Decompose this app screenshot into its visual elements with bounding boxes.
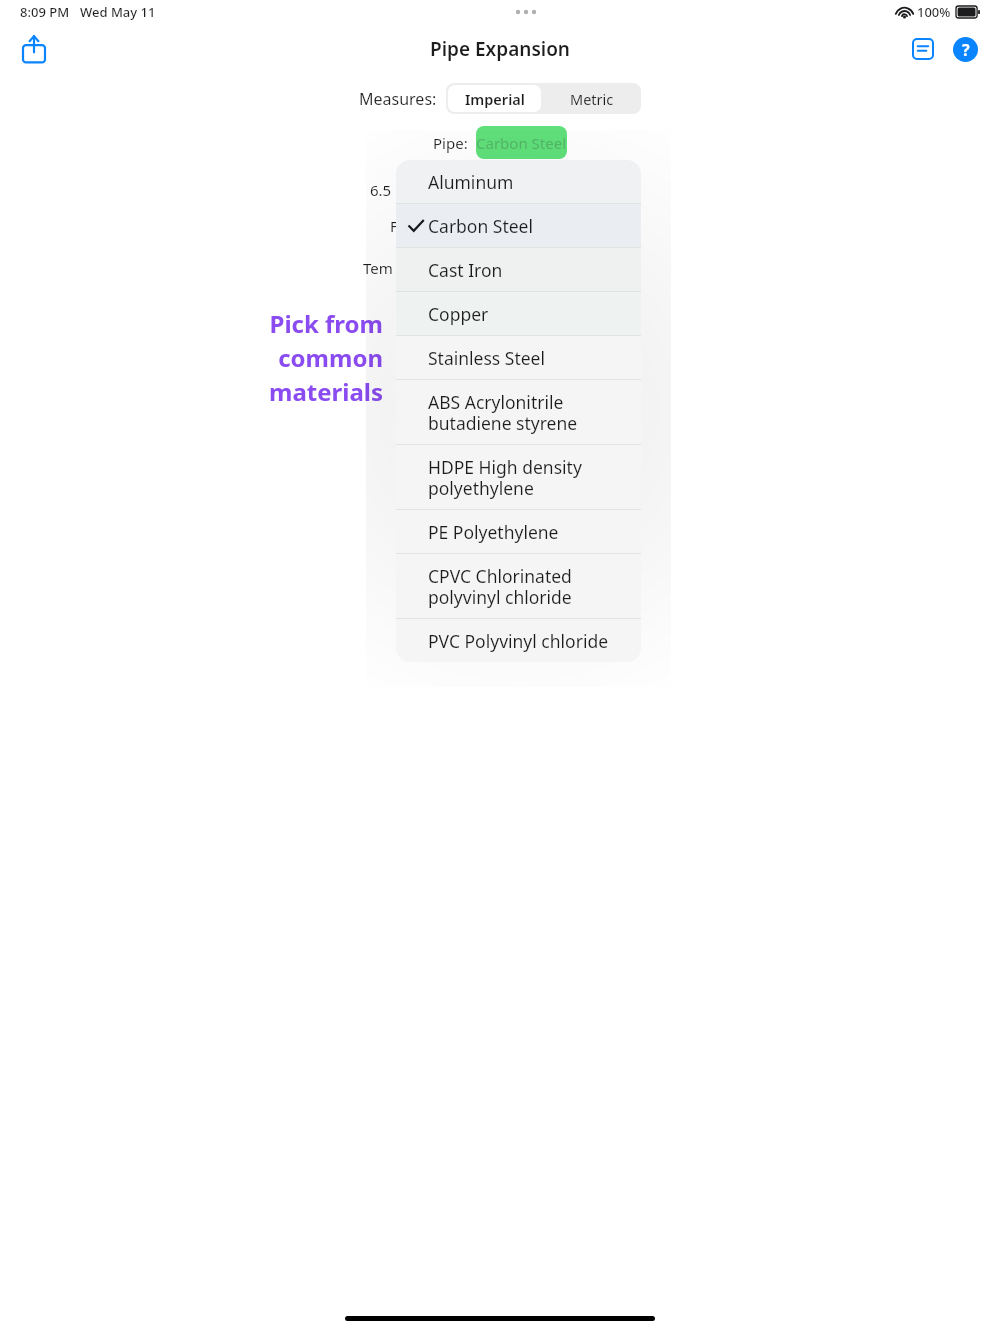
button[interactable]: ABS Acrylonitrile butadiene styrene [396, 380, 641, 444]
staticText: Measures: [359, 88, 437, 110]
staticText: HDPE High density polyethylene [428, 455, 582, 500]
staticText: 100% [917, 3, 951, 21]
staticText: Pipe Expansion [430, 36, 570, 62]
button[interactable]: Notes [902, 28, 944, 70]
button[interactable]: Copper [396, 292, 641, 335]
staticText: ABS Acrylonitrile butadiene styrene [428, 390, 578, 435]
staticText: 6.5 [370, 180, 392, 200]
staticText: PE Polyethylene [428, 520, 559, 544]
staticText: Cast Iron [428, 258, 503, 282]
staticText: Tem [363, 258, 393, 278]
button[interactable]: Cast Iron [396, 248, 641, 291]
button[interactable]: PVC Polyvinyl chloride [396, 619, 641, 662]
staticText: Wed May 11 [80, 3, 156, 21]
staticText: PVC Polyvinyl chloride [428, 629, 609, 653]
button[interactable]: Metric [543, 83, 641, 114]
staticText: CPVC Chlorinated polyvinyl chloride [428, 564, 572, 609]
button[interactable]: Carbon Steel [476, 126, 567, 159]
staticText: Stainless Steel [428, 346, 545, 370]
button[interactable]: Carbon Steel [396, 204, 641, 247]
staticText: Carbon Steel [476, 133, 567, 153]
button[interactable]: Aluminum [396, 160, 641, 203]
staticText: Copper [428, 302, 489, 326]
staticText: Imperial [465, 89, 525, 109]
staticText: Aluminum [428, 170, 514, 194]
staticText: Metric [570, 89, 614, 109]
button[interactable]: PE Polyethylene [396, 510, 641, 553]
button[interactable]: CPVC Chlorinated polyvinyl chloride [396, 554, 641, 618]
staticText: Pipe: [433, 133, 468, 153]
button[interactable]: Imperial [448, 85, 541, 112]
button[interactable]: Help [944, 28, 986, 70]
button[interactable]: Share [12, 27, 56, 71]
staticText: 8:09 PM [20, 3, 70, 21]
button[interactable]: Stainless Steel [396, 336, 641, 379]
staticText: F [390, 216, 398, 236]
staticText: Carbon Steel [428, 214, 533, 238]
staticText: ? [962, 39, 970, 61]
button[interactable]: HDPE High density polyethylene [396, 445, 641, 509]
staticText: Pick from common materials [233, 307, 383, 408]
